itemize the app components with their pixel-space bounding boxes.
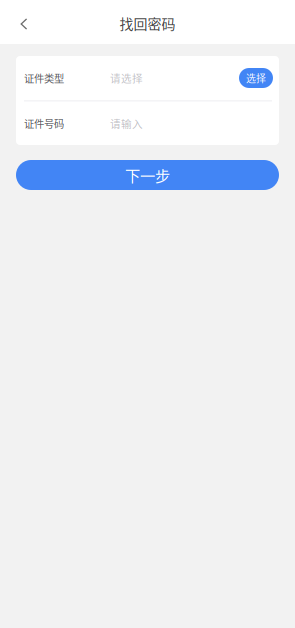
staticText: 选择: [246, 71, 266, 85]
staticText: 找回密码: [119, 13, 175, 33]
button[interactable]: 下一步: [16, 160, 279, 190]
staticText: 请选择: [110, 70, 143, 86]
button[interactable]: Back: [0, 0, 41, 44]
staticText: 证件号码: [24, 116, 64, 131]
staticText: 请输入: [110, 116, 143, 131]
button[interactable]: 证件类型: [16, 56, 279, 100]
staticText: 下一步: [125, 164, 170, 186]
staticText: 证件类型: [24, 70, 64, 85]
button[interactable]: 证件号码: [16, 102, 279, 145]
